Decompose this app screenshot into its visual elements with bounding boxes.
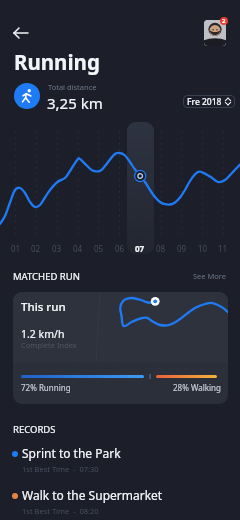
button[interactable]: Back xyxy=(8,20,34,46)
button[interactable]: Profile xyxy=(204,20,226,46)
button[interactable]: See More xyxy=(193,271,227,281)
staticText: 2 xyxy=(222,17,226,25)
staticText: 08 xyxy=(156,243,166,254)
staticText: 1st Best Time - 08:20 xyxy=(22,506,99,516)
staticText: 05 xyxy=(94,243,104,254)
staticText: Fre 2018 xyxy=(187,96,222,108)
staticText: Walk to the Supermarket xyxy=(22,487,163,503)
button[interactable]: Sprint to the Park xyxy=(0,445,240,483)
staticText: 1st Best Time - 07:30 xyxy=(22,464,99,474)
staticText: 01 xyxy=(11,243,21,254)
staticText: 3,25 km xyxy=(47,93,103,113)
staticText: 72% Running xyxy=(21,382,71,393)
button[interactable]: Fre 2018 xyxy=(183,95,235,108)
staticText: 03 xyxy=(52,243,62,254)
staticText: 11 xyxy=(218,243,228,254)
staticText: This run xyxy=(21,299,66,315)
staticText: Running xyxy=(14,48,100,76)
staticText: 09 xyxy=(177,243,187,254)
button[interactable]: This run xyxy=(13,292,228,404)
staticText: Sprint to the Park xyxy=(22,445,121,461)
staticText: RECORDS xyxy=(13,423,56,436)
staticText: MATCHED RUN xyxy=(13,270,80,283)
staticText: 06 xyxy=(115,243,125,254)
staticText: 28% Walking xyxy=(173,382,221,393)
button[interactable]: Walk to the Supermarket xyxy=(0,487,240,520)
staticText: 04 xyxy=(73,243,83,254)
staticText: Total distance xyxy=(48,82,97,92)
staticText: 07 xyxy=(135,243,145,254)
staticText: 02 xyxy=(31,243,41,254)
staticText: 10 xyxy=(198,243,208,254)
staticText: 1.2 km/h xyxy=(21,327,65,341)
staticText: Complete Index xyxy=(21,340,77,350)
